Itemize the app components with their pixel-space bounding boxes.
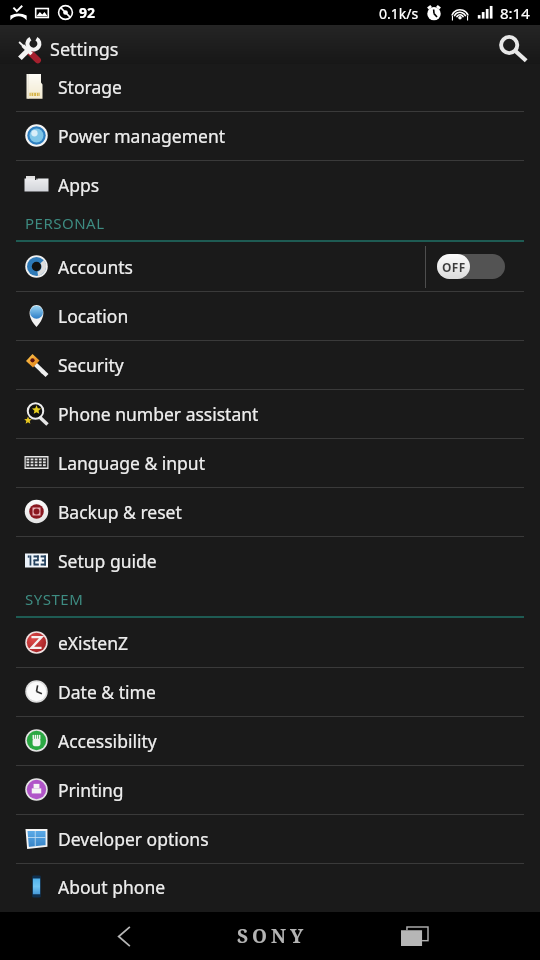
staticText: Printing	[58, 778, 124, 802]
staticText: Setup guide	[58, 549, 157, 573]
button[interactable]: Location	[0, 291, 540, 340]
button[interactable]: Date & time	[0, 667, 540, 716]
button[interactable]: Accounts	[0, 242, 540, 291]
staticText: Accounts	[58, 255, 133, 279]
button[interactable]: Setup guide	[0, 536, 540, 585]
staticText: About phone	[58, 875, 166, 899]
staticText: Phone number assistant	[58, 402, 259, 426]
button[interactable]: Power management	[0, 111, 540, 160]
staticText: OFF	[442, 259, 466, 275]
staticText: 92	[79, 3, 96, 22]
staticText: Storage	[58, 75, 122, 99]
button[interactable]: OFF	[437, 254, 505, 279]
staticText: Settings	[50, 37, 119, 62]
staticText: 0.1k/s	[379, 4, 419, 23]
staticText: SONY	[237, 923, 308, 949]
staticText: Apps	[58, 173, 100, 197]
button[interactable]: About phone	[0, 863, 540, 910]
button[interactable]: Developer options	[0, 814, 540, 863]
staticText: SYSTEM	[25, 589, 84, 609]
staticText: Backup & reset	[58, 500, 182, 524]
button[interactable]: Storage	[0, 64, 540, 111]
staticText: Accessibility	[58, 729, 157, 753]
staticText: 8:14	[500, 3, 530, 23]
button[interactable]: Search	[487, 29, 540, 68]
button[interactable]: Back	[80, 912, 168, 960]
staticText: PERSONAL	[25, 213, 105, 233]
button[interactable]: Backup & reset	[0, 487, 540, 536]
staticText: Language & input	[58, 451, 205, 475]
button[interactable]: Accessibility	[0, 716, 540, 765]
staticText: Date & time	[58, 680, 156, 704]
staticText: Developer options	[58, 827, 209, 851]
button[interactable]: Language & input	[0, 438, 540, 487]
button[interactable]: Phone number assistant	[0, 389, 540, 438]
button[interactable]: Apps	[0, 160, 540, 209]
button[interactable]: Security	[0, 340, 540, 389]
staticText: Power management	[58, 124, 226, 148]
staticText: Location	[58, 304, 129, 328]
staticText: Security	[58, 353, 124, 377]
button[interactable]: Recent apps	[383, 912, 471, 960]
staticText: eXistenZ	[58, 631, 129, 655]
button[interactable]: Settings	[0, 25, 540, 64]
button[interactable]: Printing	[0, 765, 540, 814]
button[interactable]: eXistenZ	[0, 618, 540, 667]
